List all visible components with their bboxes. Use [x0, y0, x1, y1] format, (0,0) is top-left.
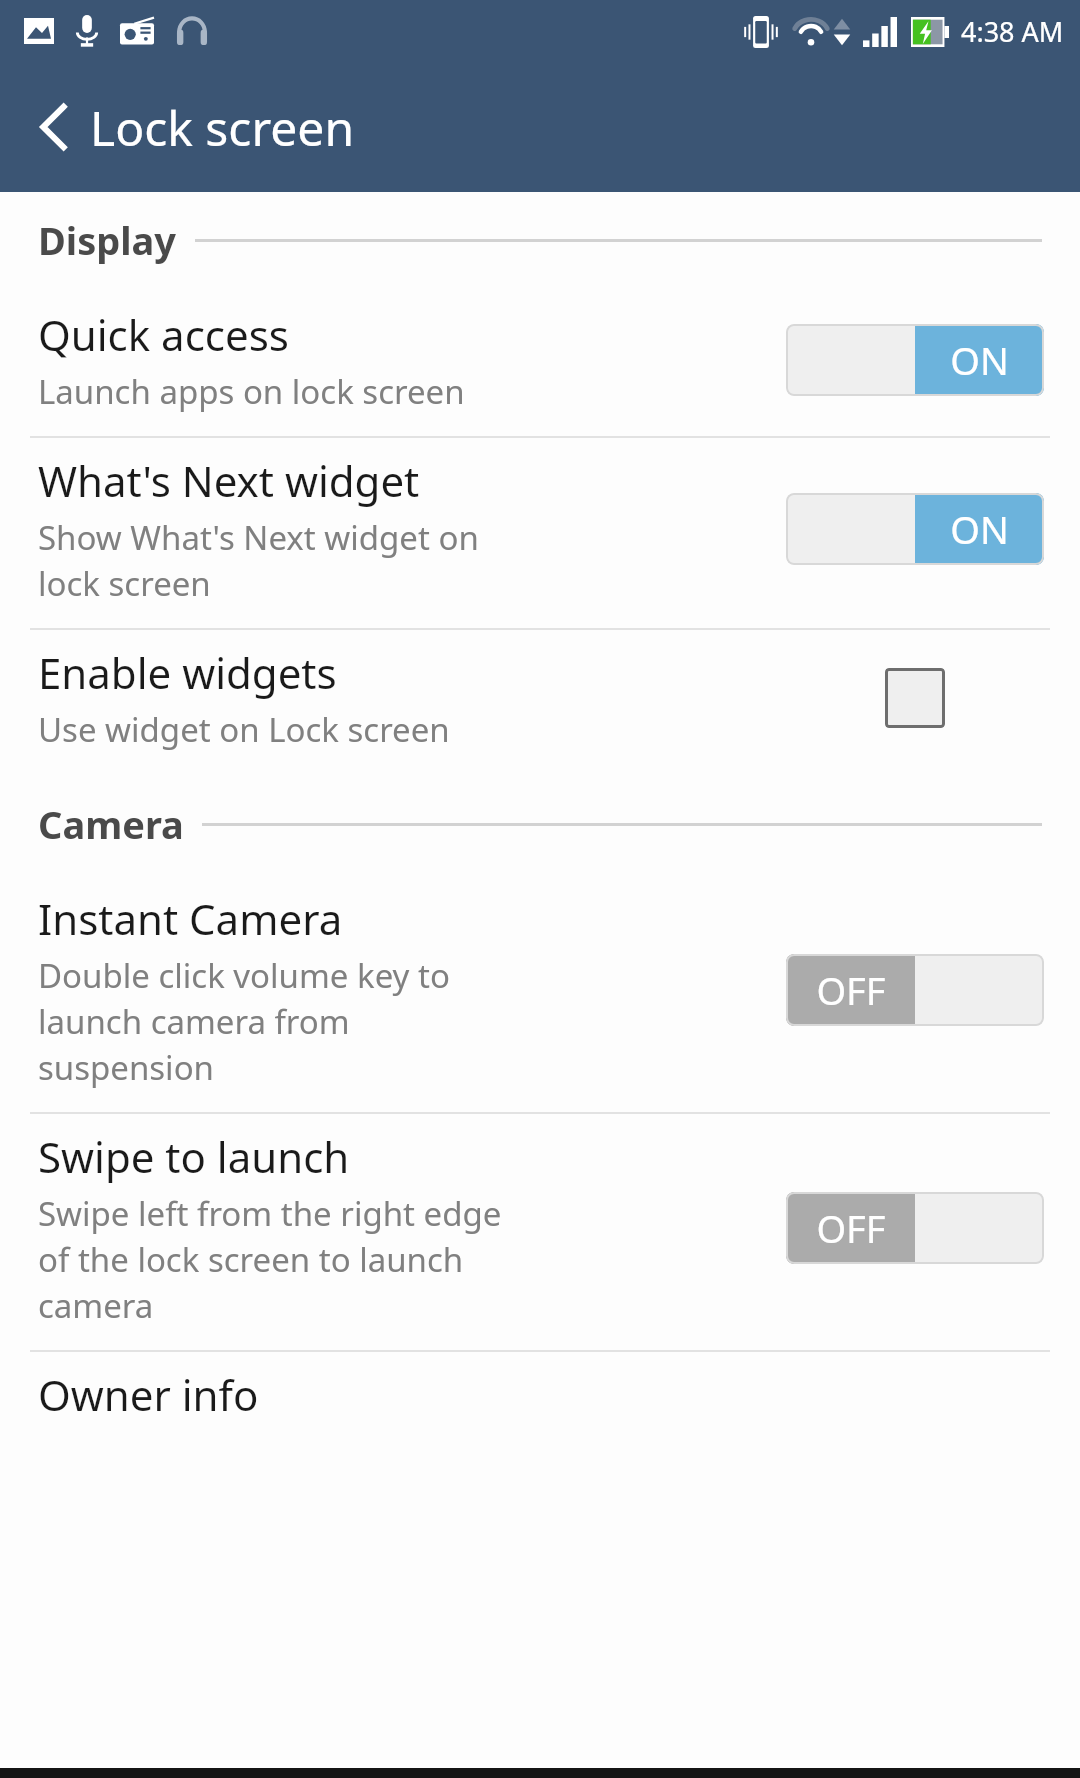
- staticText: Enable widgets: [38, 644, 337, 701]
- staticText: Show What's Next widget on lock screen: [38, 515, 479, 606]
- button[interactable]: Toggle on: [786, 324, 1044, 396]
- other: Back: [30, 103, 78, 151]
- staticText: ON: [950, 503, 1009, 555]
- button[interactable]: Toggle off: [786, 954, 1044, 1026]
- staticText: Launch apps on lock screen: [38, 369, 465, 414]
- staticText: OFF: [816, 964, 886, 1016]
- button[interactable]: Quick access: [0, 292, 1080, 436]
- staticText: Double click volume key to launch camera…: [38, 953, 450, 1090]
- button[interactable]: Enable widgets: [0, 630, 1080, 774]
- staticText: Swipe to launch: [38, 1128, 350, 1185]
- staticText: Camera: [38, 798, 184, 850]
- staticText: Lock screen: [90, 95, 355, 160]
- button[interactable]: Enable widgets checkbox: [786, 662, 1044, 734]
- staticText: ON: [950, 334, 1009, 386]
- button[interactable]: Owner info: [0, 1352, 1080, 1445]
- staticText: OFF: [816, 1202, 886, 1254]
- staticText: Swipe left from the right edge of the lo…: [38, 1191, 502, 1328]
- staticText: Display: [38, 214, 177, 266]
- staticText: Quick access: [38, 306, 289, 363]
- button[interactable]: Toggle off: [786, 1192, 1044, 1264]
- staticText: 4:38 AM: [961, 13, 1064, 50]
- staticText: Use widget on Lock screen: [38, 707, 450, 752]
- staticText: Owner info: [38, 1366, 259, 1423]
- button[interactable]: Instant Camera: [0, 876, 1080, 1112]
- staticText: What's Next widget: [38, 452, 420, 509]
- button[interactable]: Swipe to launch: [0, 1114, 1080, 1350]
- button[interactable]: Toggle on: [786, 493, 1044, 565]
- staticText: Instant Camera: [38, 890, 343, 947]
- button[interactable]: What's Next widget: [0, 438, 1080, 628]
- button[interactable]: Back: [0, 62, 1080, 192]
